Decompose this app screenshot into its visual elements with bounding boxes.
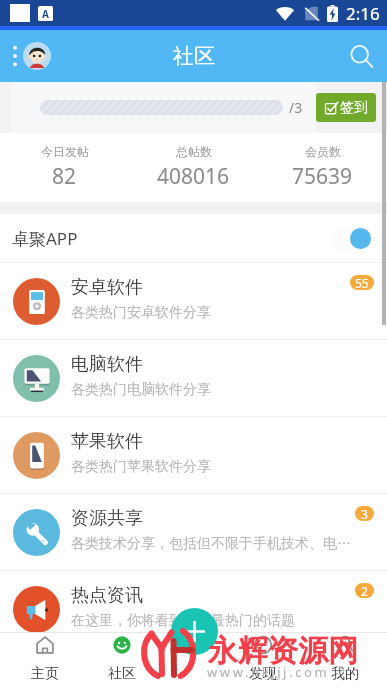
staticText: 热点资讯: [71, 584, 143, 607]
staticText: 在这里，你将看到最新最热门的话题: [71, 612, 295, 630]
button[interactable]: 社区: [92, 632, 152, 689]
staticText: 各类热门安卓软件分享: [71, 304, 211, 322]
button[interactable]: Toggle 卓聚APP: [330, 226, 373, 251]
button[interactable]: 电脑软件: [0, 340, 387, 416]
staticText: 82: [52, 162, 77, 191]
button[interactable]: 签到: [316, 93, 376, 122]
staticText: 苹果软件: [71, 430, 143, 453]
staticText: 总帖数: [176, 144, 212, 159]
staticText: 今日发帖: [41, 144, 89, 159]
staticText: 各类热门苹果软件分享: [71, 458, 211, 476]
staticText: 主页: [31, 665, 59, 683]
staticText: 签到: [340, 99, 368, 117]
button[interactable]: 热点资讯: [0, 571, 387, 647]
button[interactable]: Search: [350, 45, 387, 68]
staticText: 资源共享: [71, 507, 143, 530]
staticText: /3: [289, 98, 303, 117]
staticText: 我的: [331, 665, 359, 683]
button[interactable]: 苹果软件: [0, 417, 387, 493]
staticText: www.hkjjj.com: [207, 663, 330, 681]
staticText: 55: [355, 275, 369, 290]
button[interactable]: 卓聚APP: [0, 214, 387, 262]
staticText: 社区: [173, 43, 215, 69]
staticText: 2:16: [346, 2, 380, 25]
staticText: 会员数: [305, 144, 341, 159]
button[interactable]: 主页: [15, 632, 75, 689]
staticText: A: [42, 7, 49, 21]
staticText: 各类热门电脑软件分享: [71, 381, 211, 399]
button[interactable]: 资源共享: [0, 494, 387, 570]
staticText: 3: [361, 506, 368, 521]
button[interactable]: New post: [171, 608, 218, 655]
staticText: 卓聚APP: [12, 227, 78, 250]
button[interactable]: 发现: [233, 632, 293, 689]
staticText: 永辉资源网: [208, 632, 358, 670]
button[interactable]: 我的: [315, 632, 375, 689]
staticText: 发现: [249, 665, 277, 683]
staticText: 2: [361, 583, 368, 598]
staticText: 408016: [157, 162, 230, 191]
staticText: 社区: [108, 665, 136, 683]
staticText: 电脑软件: [71, 353, 143, 376]
staticText: 安卓软件: [71, 276, 143, 299]
staticText: 75639: [292, 162, 353, 191]
staticText: 各类技术分享，包括但不限于手机技术、电脑技…: [71, 535, 355, 553]
button[interactable]: 安卓软件: [0, 263, 387, 339]
button[interactable]: Profile menu: [0, 42, 57, 70]
